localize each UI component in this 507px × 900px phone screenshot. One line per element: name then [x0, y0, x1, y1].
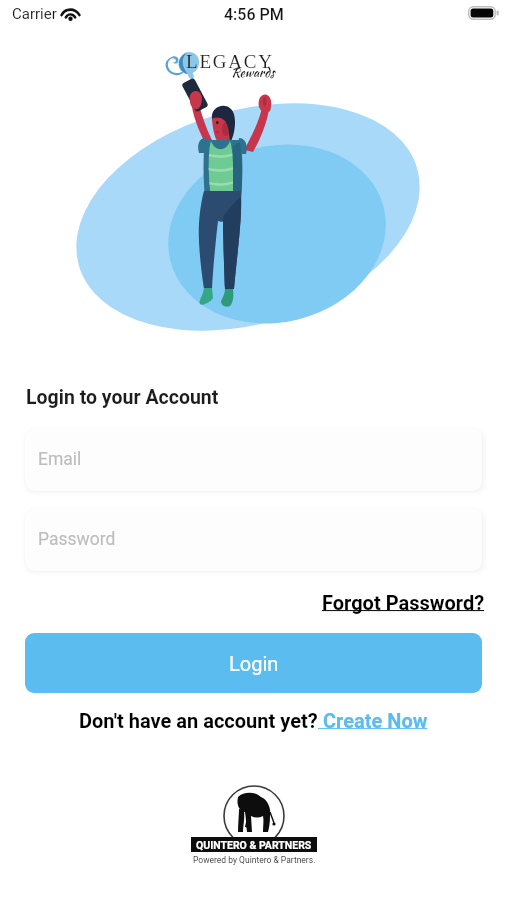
staticText: Forgot Password? — [322, 591, 485, 614]
staticText: 4:56 PM — [224, 5, 284, 24]
button[interactable]: Password — [25, 508, 482, 571]
staticText: Powered by Quintero & Partners. — [193, 855, 316, 865]
staticText: Carrier — [12, 5, 57, 23]
staticText: LEGACY — [186, 51, 274, 72]
staticText: Don't have an account yet? — [79, 709, 318, 732]
button[interactable]: Login — [25, 633, 482, 693]
staticText: Password — [38, 529, 116, 550]
button[interactable]: Create Now — [318, 709, 428, 732]
staticText: Email — [38, 449, 82, 470]
staticText: Rewards — [231, 63, 275, 82]
button[interactable]: Forgot Password? — [318, 588, 489, 617]
button[interactable]: Email — [25, 428, 482, 491]
staticText: Create Now — [318, 709, 428, 732]
staticText: Login — [229, 652, 279, 675]
staticText: Login to your Account — [26, 386, 219, 409]
staticText: QUINTERO & PARTNERS — [196, 839, 312, 851]
